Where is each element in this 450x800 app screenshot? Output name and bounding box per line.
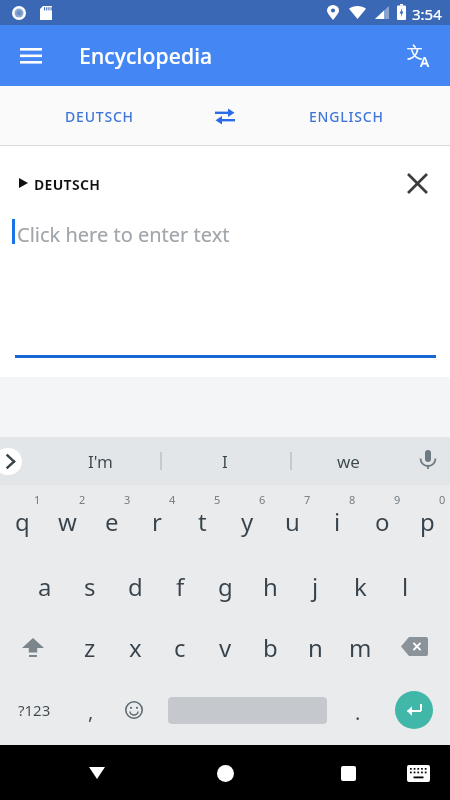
- button[interactable]: [392, 624, 436, 668]
- button[interactable]: c: [158, 625, 202, 669]
- button[interactable]: we: [303, 437, 393, 485]
- button[interactable]: I'm: [55, 437, 145, 485]
- staticText: I'm: [88, 450, 113, 473]
- button[interactable]: r: [135, 499, 179, 543]
- staticText: x: [129, 631, 142, 664]
- staticText: v: [219, 631, 232, 664]
- button[interactable]: [395, 691, 433, 729]
- staticText: c: [174, 631, 186, 664]
- staticText: w: [58, 505, 77, 538]
- staticText: Click here to enter text: [17, 221, 230, 248]
- button[interactable]: z: [68, 625, 112, 669]
- button[interactable]: .: [336, 690, 380, 734]
- button[interactable]: s: [68, 564, 112, 608]
- button[interactable]: t: [180, 499, 224, 543]
- staticText: 6: [259, 492, 266, 507]
- button[interactable]: v: [203, 625, 247, 669]
- button[interactable]: q: [0, 499, 44, 543]
- staticText: 5: [214, 492, 221, 507]
- button[interactable]: ?123: [8, 688, 60, 732]
- staticText: s: [84, 570, 96, 603]
- button[interactable]: o: [360, 499, 404, 543]
- button[interactable]: [326, 751, 370, 795]
- staticText: f: [176, 570, 185, 603]
- button[interactable]: i: [315, 499, 359, 543]
- staticText: 7: [304, 492, 311, 507]
- button[interactable]: l: [383, 564, 427, 608]
- staticText: d: [128, 570, 143, 603]
- staticText: n: [308, 631, 323, 664]
- staticText: q: [15, 505, 30, 538]
- button[interactable]: [10, 153, 100, 183]
- staticText: a: [38, 570, 52, 603]
- staticText: ,: [88, 698, 94, 725]
- button[interactable]: f: [158, 564, 202, 608]
- button[interactable]: ENGLISCH: [247, 86, 445, 146]
- staticText: A: [420, 52, 430, 71]
- button[interactable]: [11, 625, 55, 669]
- staticText: Encyclopedia: [79, 42, 213, 71]
- button[interactable]: k: [338, 564, 382, 608]
- button[interactable]: [396, 751, 440, 795]
- button[interactable]: b: [248, 625, 292, 669]
- button[interactable]: DEUTSCH: [0, 86, 198, 146]
- staticText: 4: [169, 492, 176, 507]
- button[interactable]: x: [113, 625, 157, 669]
- staticText: DEUTSCH: [34, 175, 101, 194]
- staticText: 1: [34, 492, 41, 507]
- button[interactable]: [75, 751, 119, 795]
- staticText: p: [420, 505, 435, 538]
- button[interactable]: j: [293, 564, 337, 608]
- staticText: t: [198, 505, 207, 538]
- button[interactable]: a: [23, 564, 67, 608]
- staticText: ?123: [18, 700, 51, 720]
- button[interactable]: n: [293, 625, 337, 669]
- staticText: DEUTSCH: [65, 107, 134, 126]
- staticText: u: [285, 505, 300, 538]
- button[interactable]: [9, 34, 53, 78]
- button[interactable]: y: [225, 499, 269, 543]
- staticText: e: [105, 505, 119, 538]
- staticText: 9: [394, 492, 401, 507]
- staticText: 8: [349, 492, 356, 507]
- button[interactable]: I: [180, 437, 270, 485]
- staticText: i: [334, 505, 341, 538]
- staticText: 3:54: [412, 4, 442, 24]
- staticText: 2: [79, 492, 86, 507]
- button[interactable]: [203, 751, 247, 795]
- button[interactable]: u: [270, 499, 314, 543]
- button[interactable]: [112, 688, 156, 732]
- staticText: b: [263, 631, 278, 664]
- button[interactable]: d: [113, 564, 157, 608]
- staticText: 文: [407, 43, 423, 63]
- button[interactable]: e: [90, 499, 134, 543]
- button[interactable]: h: [248, 564, 292, 608]
- button[interactable]: [395, 161, 439, 205]
- staticText: l: [402, 570, 409, 603]
- button[interactable]: p: [405, 499, 449, 543]
- staticText: j: [312, 570, 319, 603]
- button[interactable]: 文: [398, 34, 442, 78]
- button[interactable]: w: [45, 499, 89, 543]
- button[interactable]: m: [338, 625, 382, 669]
- staticText: m: [349, 631, 372, 664]
- button[interactable]: g: [203, 564, 247, 608]
- staticText: h: [263, 570, 278, 603]
- staticText: g: [218, 570, 233, 603]
- staticText: ENGLISCH: [309, 107, 384, 126]
- button[interactable]: [205, 96, 245, 136]
- button[interactable]: [406, 439, 450, 483]
- button[interactable]: [0, 448, 22, 475]
- staticText: 3: [124, 492, 131, 507]
- staticText: we: [337, 450, 360, 473]
- staticText: 0: [439, 492, 446, 507]
- staticText: I: [222, 450, 228, 473]
- staticText: y: [241, 505, 254, 538]
- button[interactable]: ,: [69, 689, 113, 733]
- staticText: .: [355, 699, 361, 726]
- staticText: z: [84, 631, 96, 664]
- staticText: k: [354, 570, 367, 603]
- staticText: r: [152, 505, 162, 538]
- staticText: o: [375, 505, 390, 538]
